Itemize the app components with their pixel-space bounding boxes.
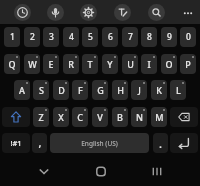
staticText: X xyxy=(58,111,64,123)
button[interactable]: U xyxy=(122,54,138,74)
button[interactable]: , xyxy=(32,133,47,153)
button[interactable]: X xyxy=(53,107,69,127)
staticText: 2 xyxy=(30,31,35,43)
staticText: , xyxy=(38,135,42,150)
button[interactable] xyxy=(170,133,198,153)
button[interactable]: D xyxy=(53,80,69,100)
staticText: G xyxy=(97,84,104,96)
button[interactable] xyxy=(147,162,167,181)
button[interactable]: 9 xyxy=(161,27,177,47)
button[interactable]: !#1 xyxy=(2,133,30,153)
button[interactable] xyxy=(148,4,165,21)
button[interactable]: Z xyxy=(33,107,49,127)
button[interactable] xyxy=(91,162,111,181)
button[interactable]: I xyxy=(141,54,157,74)
staticText: A xyxy=(19,84,25,96)
staticText: C xyxy=(77,111,83,123)
button[interactable]: H xyxy=(112,80,128,100)
button[interactable] xyxy=(47,4,64,21)
staticText: 4 xyxy=(69,31,74,43)
staticText: Q xyxy=(8,58,16,70)
button[interactable]: L xyxy=(170,80,186,100)
button[interactable]: O xyxy=(161,54,177,74)
button[interactable]: N xyxy=(131,107,147,127)
button[interactable] xyxy=(80,4,97,21)
button[interactable] xyxy=(170,107,198,127)
button[interactable] xyxy=(14,4,31,21)
button[interactable]: W xyxy=(24,54,40,74)
staticText: 9 xyxy=(167,31,172,43)
staticText: Z xyxy=(38,111,44,123)
button[interactable]: V xyxy=(92,107,108,127)
staticText: T xyxy=(87,58,93,70)
button[interactable]: K xyxy=(151,80,167,100)
staticText: W xyxy=(28,58,37,70)
staticText: H xyxy=(117,84,124,96)
button[interactable]: . xyxy=(153,133,168,153)
button[interactable]: S xyxy=(33,80,49,100)
button[interactable]: English (US) xyxy=(50,133,149,153)
staticText: Y xyxy=(107,58,113,70)
staticText: O xyxy=(165,58,173,70)
button[interactable]: 3 xyxy=(43,27,59,47)
button[interactable]: F xyxy=(72,80,88,100)
staticText: N xyxy=(136,111,143,123)
button[interactable] xyxy=(180,5,196,21)
staticText: K xyxy=(156,84,162,96)
button[interactable]: J xyxy=(131,80,147,100)
staticText: I xyxy=(147,58,151,70)
staticText: 3 xyxy=(49,31,54,43)
staticText: !#1 xyxy=(10,138,22,148)
staticText: 0 xyxy=(186,31,191,43)
staticText: 6 xyxy=(108,31,113,43)
button[interactable]: C xyxy=(72,107,88,127)
staticText: P xyxy=(185,58,191,70)
staticText: R xyxy=(68,58,74,70)
staticText: 7 xyxy=(128,31,133,43)
staticText: . xyxy=(159,136,162,151)
button[interactable] xyxy=(34,162,54,181)
button[interactable] xyxy=(2,107,30,127)
button[interactable]: E xyxy=(43,54,59,74)
button[interactable]: 0 xyxy=(180,27,196,47)
button[interactable]: Y xyxy=(102,54,118,74)
staticText: 1 xyxy=(10,31,15,43)
button[interactable]: 8 xyxy=(141,27,157,47)
staticText: 8 xyxy=(147,31,152,43)
staticText: J xyxy=(138,84,141,96)
staticText: L xyxy=(176,84,181,96)
staticText: E xyxy=(48,58,54,70)
button[interactable]: A xyxy=(14,80,30,100)
staticText: U xyxy=(127,58,134,70)
button[interactable] xyxy=(114,4,131,21)
button[interactable]: R xyxy=(63,54,79,74)
staticText: F xyxy=(78,84,83,96)
button[interactable]: T xyxy=(82,54,98,74)
staticText: 5 xyxy=(88,31,93,43)
button[interactable]: 2 xyxy=(24,27,40,47)
button[interactable]: 7 xyxy=(122,27,138,47)
staticText: V xyxy=(97,111,103,123)
button[interactable]: 6 xyxy=(102,27,118,47)
button[interactable]: P xyxy=(180,54,196,74)
staticText: M xyxy=(155,111,164,123)
button[interactable]: 1 xyxy=(4,27,20,47)
staticText: S xyxy=(39,84,44,96)
button[interactable]: Q xyxy=(4,54,20,74)
button[interactable]: 5 xyxy=(82,27,98,47)
staticText: B xyxy=(117,111,123,123)
button[interactable]: M xyxy=(151,107,167,127)
button[interactable]: B xyxy=(112,107,128,127)
staticText: English (US) xyxy=(81,139,118,148)
button[interactable]: 4 xyxy=(63,27,79,47)
button[interactable]: G xyxy=(92,80,108,100)
staticText: D xyxy=(58,84,65,96)
